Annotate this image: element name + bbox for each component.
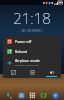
staticText: Airplane mode: [15, 58, 40, 63]
button[interactable]: Screenshot: [3, 68, 23, 78]
staticText: Airplane mode is OFF: [15, 63, 39, 66]
staticText: SAT, DECEMBER 5: [21, 29, 43, 33]
button[interactable]: Reboot: [3, 46, 61, 56]
other: Power off: [6, 38, 12, 44]
button[interactable]: Apps: [28, 91, 36, 99]
button[interactable]: Messaging: [17, 91, 25, 99]
button[interactable]: Phone: [5, 91, 13, 99]
other: Reboot: [6, 48, 12, 54]
button[interactable]: Silent mode: [23, 68, 42, 78]
staticText: 21:18: [13, 8, 51, 28]
other: Airplane mode: [6, 59, 12, 65]
button[interactable]: Power off: [3, 36, 61, 46]
staticText: Reboot: [15, 49, 28, 54]
button[interactable]: Camera: [39, 91, 47, 99]
button[interactable]: Browser: [51, 91, 59, 99]
button[interactable]: Sound on: [42, 68, 61, 78]
button[interactable]: Airplane mode: [3, 56, 61, 68]
staticText: Power off: [15, 39, 32, 44]
